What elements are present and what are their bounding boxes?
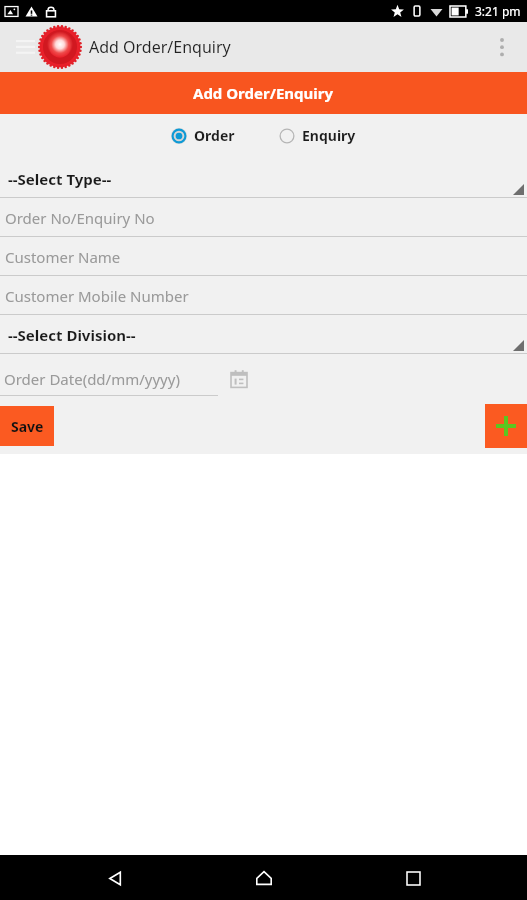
staticText: Save <box>11 417 44 436</box>
staticText: Customer Mobile Number <box>5 286 189 306</box>
button[interactable]: Order No/Enquiry No <box>0 198 527 237</box>
button[interactable]: Recent apps <box>391 856 435 900</box>
staticText: Order <box>194 126 235 145</box>
staticText: --Select Type-- <box>8 169 112 189</box>
staticText: Enquiry <box>302 126 356 145</box>
staticText: Customer Name <box>5 247 121 267</box>
button[interactable]: Open navigation menu <box>14 34 36 60</box>
staticText: Order No/Enquiry No <box>5 208 155 228</box>
button[interactable]: Pick order date <box>226 366 252 392</box>
staticText: 3:21 pm <box>475 3 521 19</box>
staticText: Add Order/Enquiry <box>89 36 231 58</box>
button[interactable]: Order Date(dd/mm/yyyy) <box>0 362 218 396</box>
button[interactable]: --Select Division-- <box>0 315 527 354</box>
button[interactable]: Home <box>242 856 286 900</box>
button[interactable]: Enquiry <box>275 122 360 149</box>
button[interactable]: Save <box>0 406 54 446</box>
button[interactable]: Customer Name <box>0 237 527 276</box>
button[interactable]: Order <box>167 122 239 149</box>
staticText: Add Order/Enquiry <box>193 83 334 103</box>
button[interactable]: --Select Type-- <box>0 159 527 198</box>
button[interactable]: Back <box>93 856 137 900</box>
button[interactable]: Add item <box>485 404 527 448</box>
staticText: Order Date(dd/mm/yyyy) <box>4 369 180 389</box>
button[interactable]: More options <box>485 25 519 69</box>
staticText: --Select Division-- <box>8 325 136 345</box>
button[interactable]: Customer Mobile Number <box>0 276 527 315</box>
